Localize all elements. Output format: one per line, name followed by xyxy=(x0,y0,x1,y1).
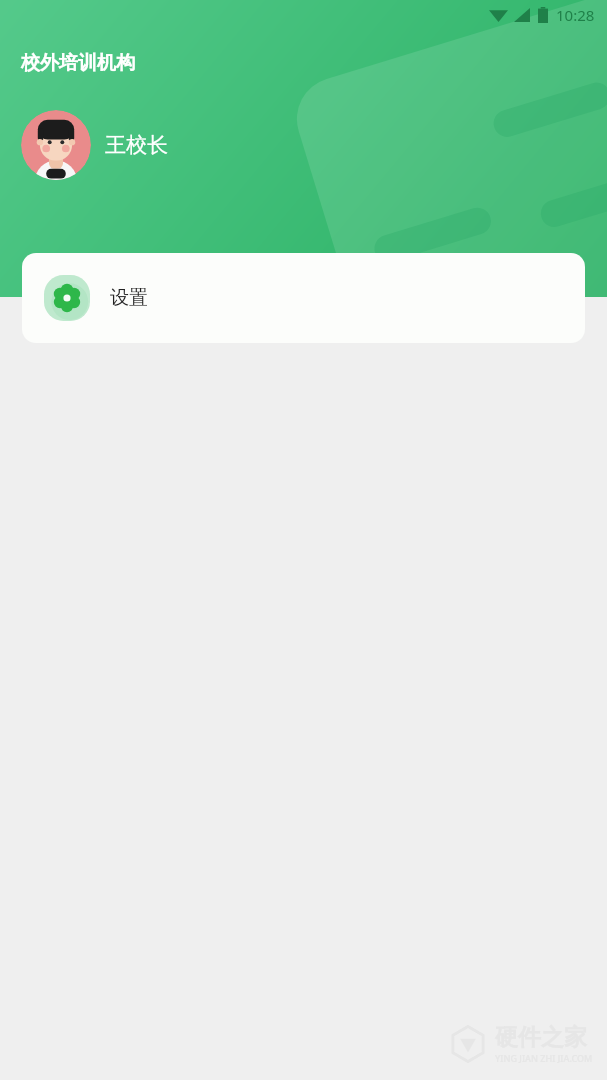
staticText: 10:28 xyxy=(556,5,595,25)
staticText: YING JIAN ZHI JIA.COM xyxy=(495,1052,593,1064)
staticText: 王校长 xyxy=(105,132,168,158)
button[interactable]: 设置 xyxy=(22,253,585,343)
staticText: 校外培训机构 xyxy=(21,51,135,75)
staticText: 硬件之家 xyxy=(495,1023,587,1052)
button[interactable]: Profile avatar xyxy=(21,110,91,180)
staticText: 设置 xyxy=(110,286,148,310)
